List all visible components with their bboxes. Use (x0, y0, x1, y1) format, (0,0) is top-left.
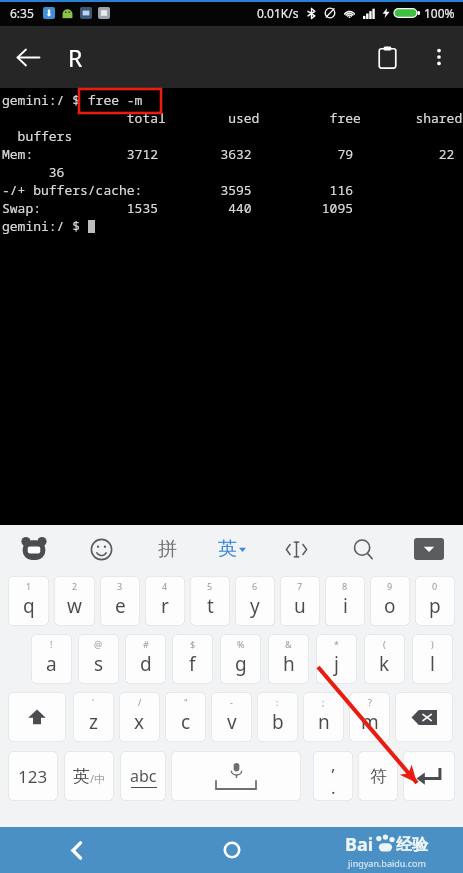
button[interactable]: abc (120, 751, 166, 801)
button[interactable]: Back (0, 29, 56, 85)
button[interactable]: % (220, 634, 261, 684)
button[interactable]: 1 (8, 576, 49, 626)
button[interactable]: ( (364, 634, 405, 684)
button[interactable]: $ (172, 634, 213, 684)
staticText: ' (92, 696, 95, 708)
button[interactable]: 2 (54, 576, 95, 626)
staticText: & (285, 638, 292, 650)
button[interactable]: 5 (190, 576, 230, 626)
button[interactable]: Emoji (81, 529, 121, 569)
staticText: e (115, 593, 126, 619)
staticText: Bai (345, 832, 374, 857)
staticText: q (23, 593, 35, 619)
staticText: w (67, 593, 82, 619)
button[interactable]: 8 (325, 576, 365, 626)
button[interactable]: Baidu input settings (14, 529, 54, 569)
staticText: , (331, 753, 336, 776)
staticText: 36 (2, 163, 65, 181)
staticText: j (334, 651, 339, 677)
button[interactable]: ! (31, 634, 72, 684)
button[interactable]: 英 (64, 751, 114, 801)
staticText: 1 (26, 580, 32, 592)
staticText: 拼 (158, 537, 177, 561)
button[interactable]: ' (73, 692, 114, 742)
button[interactable]: @ (78, 634, 119, 684)
button[interactable]: Space (171, 751, 301, 801)
button[interactable]: 0 (415, 576, 455, 626)
button[interactable]: 9 (370, 576, 410, 626)
staticText: - (230, 696, 233, 708)
button[interactable]: : (257, 692, 298, 742)
button[interactable]: 拼 (147, 529, 187, 569)
button[interactable]: ; (303, 692, 344, 742)
staticText: i (343, 593, 348, 619)
button[interactable]: / (119, 692, 160, 742)
staticText: f (189, 651, 196, 677)
staticText: gemini:/ $ (2, 217, 88, 235)
button[interactable]: Hide keyboard (409, 529, 449, 569)
staticText: 8 (342, 580, 348, 592)
button[interactable]: " (165, 692, 206, 742)
button[interactable]: ) (412, 634, 453, 684)
button[interactable]: Enter (403, 751, 455, 801)
button[interactable]: 3 (100, 576, 140, 626)
staticText: 英 (218, 537, 237, 561)
button[interactable]: 7 (280, 576, 320, 626)
staticText: Mem: 3712 3632 79 22 (2, 145, 455, 163)
staticText: 英 (73, 766, 90, 787)
staticText: 6 (252, 580, 258, 592)
staticText: # (143, 638, 149, 650)
staticText: d (140, 651, 152, 677)
button[interactable]: Move cursor (276, 529, 316, 569)
button[interactable]: Back (0, 827, 155, 873)
staticText: 符 (370, 766, 387, 787)
button[interactable]: Home (155, 827, 309, 873)
button[interactable]: 123 (8, 751, 58, 801)
button[interactable]: * (316, 634, 357, 684)
staticText: h (283, 651, 295, 677)
staticText: abc (130, 765, 157, 787)
staticText: 2 (72, 580, 78, 592)
staticText: $ (190, 638, 196, 650)
staticText: ( (383, 638, 386, 650)
staticText: l (430, 651, 435, 677)
staticText: 6:35 (10, 5, 34, 21)
button[interactable]: # (125, 634, 166, 684)
staticText: m (361, 709, 379, 735)
staticText: / (138, 696, 142, 708)
button[interactable]: Search (343, 529, 383, 569)
staticText: 100% (424, 5, 455, 21)
staticText: buffers (2, 127, 73, 145)
button[interactable]: 4 (145, 576, 185, 626)
staticText: r (161, 593, 169, 619)
staticText: v (227, 709, 237, 735)
button[interactable]: 英 (214, 531, 250, 567)
button[interactable]: 符 (358, 751, 398, 801)
staticText: * (334, 638, 339, 650)
staticText: g (235, 651, 247, 677)
staticText: 9 (387, 580, 393, 592)
button[interactable]: Backspace (395, 692, 453, 742)
staticText: 3 (117, 580, 123, 592)
staticText: % (237, 638, 245, 650)
staticText: c (181, 709, 191, 735)
staticText: 经验 (396, 835, 428, 855)
button[interactable]: ? (349, 692, 390, 742)
button[interactable]: Shift (8, 692, 66, 742)
button[interactable]: - (211, 692, 252, 742)
staticText: total used free shared (2, 109, 463, 127)
staticText: jingyan.baidu.com (348, 857, 426, 869)
button[interactable]: , (313, 751, 353, 801)
staticText: 123 (18, 765, 48, 788)
staticText: 4 (162, 580, 168, 592)
staticText: o (384, 593, 396, 619)
button[interactable]: More options (415, 33, 463, 81)
button[interactable]: Clipboard (359, 29, 415, 85)
staticText: . (331, 776, 336, 799)
button[interactable]: 6 (235, 576, 275, 626)
button[interactable]: & (268, 634, 309, 684)
staticText: n (318, 709, 330, 735)
staticText: t (207, 593, 214, 619)
staticText: 5 (207, 580, 213, 592)
staticText: " (184, 696, 188, 708)
